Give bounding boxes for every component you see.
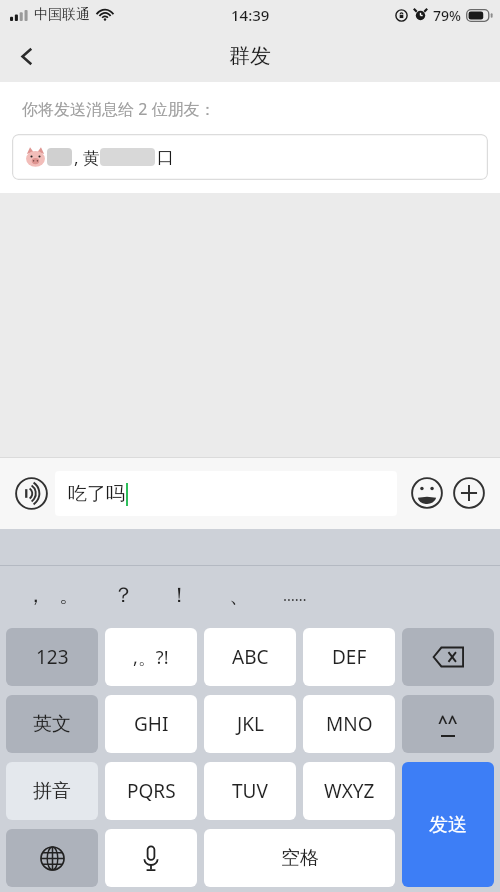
button[interactable]: GHI <box>105 695 197 753</box>
button[interactable]: ,。?! <box>105 628 197 686</box>
staticText: GHI <box>134 711 169 737</box>
button[interactable]: Backspace <box>402 628 494 686</box>
button[interactable]: 123 <box>6 628 98 686</box>
staticText: ？ <box>113 582 134 608</box>
button[interactable]: More <box>448 472 490 514</box>
button[interactable]: ！ <box>162 566 196 624</box>
button[interactable]: ABC <box>204 628 296 686</box>
staticText: 拼音 <box>33 779 71 803</box>
button[interactable]: …… <box>278 566 312 624</box>
button[interactable]: Voice input <box>10 472 52 514</box>
staticText: WXYZ <box>324 778 375 804</box>
button[interactable]: DEF <box>303 628 395 686</box>
button[interactable]: Voice input <box>105 829 197 887</box>
staticText: 发送 <box>429 813 467 837</box>
button[interactable]: MNO <box>303 695 395 753</box>
staticText: 英文 <box>33 712 71 736</box>
staticText: 口 <box>157 147 174 168</box>
staticText: 。 <box>59 582 80 608</box>
staticText: ABC <box>232 644 269 670</box>
button[interactable]: 。 <box>52 566 86 624</box>
button[interactable]: 空格 <box>204 829 395 887</box>
button[interactable]: Switch input language <box>6 829 98 887</box>
staticText: 吃了吗 <box>68 482 125 506</box>
staticText: PQRS <box>127 778 176 804</box>
staticText: 你将发送消息给 2 位朋友： <box>22 98 216 120</box>
staticText: TUV <box>232 778 268 804</box>
button[interactable]: Back <box>0 30 54 82</box>
staticText: ！ <box>169 582 190 608</box>
button[interactable]: ^^ <box>402 695 494 753</box>
staticText: …… <box>283 585 307 605</box>
staticText: 群发 <box>229 43 271 69</box>
button[interactable]: ？ <box>106 566 140 624</box>
staticText: 14:39 <box>231 5 270 25</box>
staticText: JKL <box>237 711 264 737</box>
button[interactable]: , 黄 <box>12 134 488 180</box>
staticText: ,。?! <box>133 645 169 670</box>
staticText: DEF <box>332 644 367 670</box>
button[interactable]: 拼音 <box>6 762 98 820</box>
staticText: ^^ <box>438 711 458 734</box>
staticText: 、 <box>229 582 250 608</box>
staticText: 空格 <box>281 846 319 870</box>
staticText: , 黄 <box>74 146 100 169</box>
button[interactable]: JKL <box>204 695 296 753</box>
button[interactable]: TUV <box>204 762 296 820</box>
button[interactable]: WXYZ <box>303 762 395 820</box>
staticText: MNO <box>326 711 373 737</box>
button[interactable]: Emoji <box>406 472 448 514</box>
button[interactable]: 英文 <box>6 695 98 753</box>
staticText: 中国联通 <box>34 6 90 24</box>
button[interactable]: ， <box>18 566 52 624</box>
button[interactable]: PQRS <box>105 762 197 820</box>
button[interactable]: 吃了吗 <box>55 471 397 516</box>
staticText: ， <box>25 582 46 608</box>
staticText: 123 <box>36 644 69 670</box>
button[interactable]: 发送 <box>402 762 494 887</box>
staticText: 79% <box>433 6 461 25</box>
button[interactable]: 、 <box>222 566 256 624</box>
